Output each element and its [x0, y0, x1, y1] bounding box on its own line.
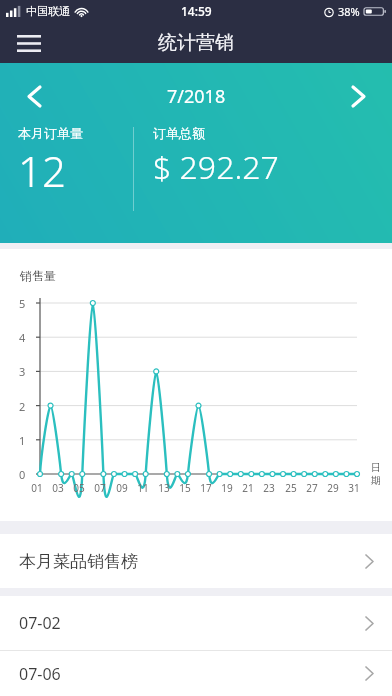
staticText: 15 — [179, 481, 191, 495]
staticText: 11 — [137, 481, 149, 495]
staticText: 销售量 — [20, 268, 56, 283]
staticText: 0 — [19, 467, 26, 482]
button[interactable]: Menu — [12, 26, 46, 60]
staticText: 25 — [285, 481, 297, 495]
staticText: 31 — [348, 481, 360, 495]
staticText: 本月订单量 — [18, 125, 83, 141]
staticText: 23 — [263, 481, 275, 495]
button[interactable]: 07-06 — [0, 651, 392, 696]
staticText: 13 — [158, 481, 170, 495]
staticText: 7/2018 — [167, 84, 226, 109]
staticText: 09 — [116, 481, 128, 495]
staticText: 19 — [221, 481, 233, 495]
staticText: 3 — [19, 364, 26, 379]
staticText: 期 — [371, 474, 381, 487]
button[interactable]: Next month — [338, 76, 378, 116]
staticText: 1 — [19, 433, 26, 448]
staticText: 07-06 — [19, 663, 61, 685]
staticText: 统计营销 — [158, 31, 234, 55]
staticText: 中国联通 — [26, 4, 70, 18]
staticText: 07-02 — [19, 612, 61, 634]
button[interactable]: Previous month — [14, 76, 54, 116]
staticText: 14:59 — [181, 3, 212, 19]
staticText: 订单总额 — [153, 125, 205, 141]
staticText: 2 — [19, 399, 26, 414]
staticText: 本月菜品销售榜 — [19, 551, 138, 572]
button[interactable]: 07-02 — [0, 596, 392, 650]
staticText: 07 — [94, 481, 106, 495]
staticText: 17 — [200, 481, 212, 495]
button[interactable]: 本月菜品销售榜 — [0, 534, 392, 588]
staticText: 21 — [242, 481, 254, 495]
staticText: 12 — [18, 142, 66, 199]
staticText: 29 — [327, 481, 339, 495]
staticText: 05 — [73, 481, 85, 495]
staticText: $ 292.27 — [153, 145, 279, 189]
staticText: 03 — [52, 481, 64, 495]
staticText: 01 — [31, 481, 43, 495]
staticText: 27 — [306, 481, 318, 495]
staticText: 5 — [19, 296, 26, 311]
staticText: 4 — [19, 330, 26, 345]
staticText: 日 — [371, 461, 381, 474]
staticText: 38% — [338, 4, 360, 19]
